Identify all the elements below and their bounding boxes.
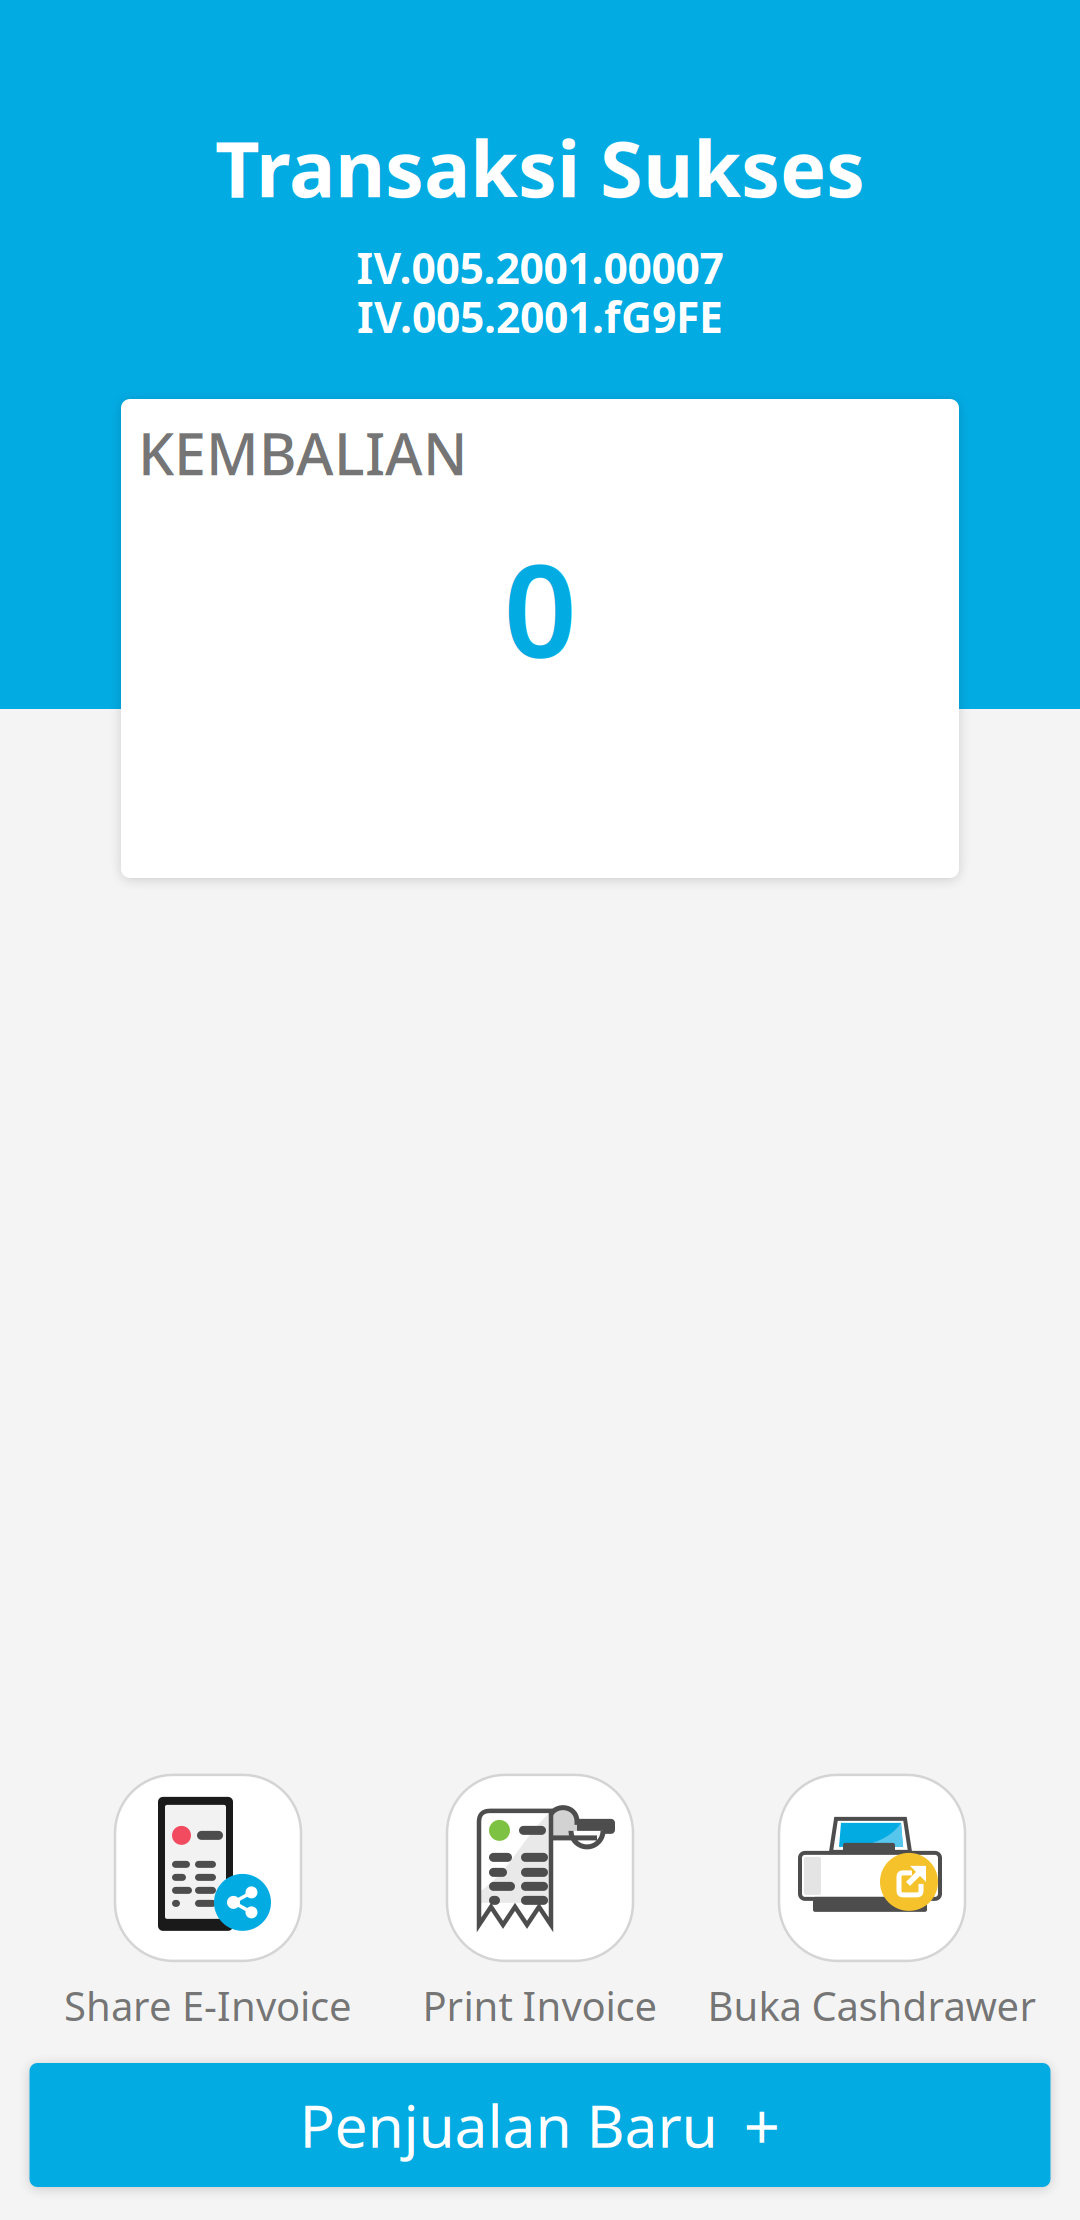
button[interactable]: Penjualan Baru [29, 2063, 1050, 2187]
staticText: IV.005.2001.fG9FE [357, 288, 723, 345]
staticText: Buka Cashdrawer [707, 1979, 1036, 2032]
staticText: Transaksi Sukses [215, 116, 865, 219]
button[interactable]: Print Invoice [374, 1775, 706, 2032]
staticText: KEMBALIAN [138, 415, 467, 491]
staticText: + [743, 2082, 780, 2167]
button[interactable]: Share E-Invoice [42, 1775, 374, 2032]
staticText: IV.005.2001.00007 [356, 239, 723, 296]
staticText: Share E-Invoice [64, 1979, 352, 2032]
staticText: 0 [503, 523, 576, 693]
button[interactable]: Buka Cashdrawer [706, 1775, 1038, 2032]
staticText: Penjualan Baru [299, 2086, 717, 2164]
staticText: Print Invoice [422, 1979, 657, 2032]
